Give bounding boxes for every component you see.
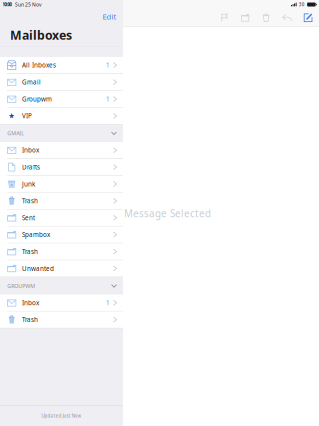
staticText: No Message Selected bbox=[108, 207, 211, 220]
button[interactable]: Drafts bbox=[0, 159, 123, 176]
staticText: GROUPWM bbox=[7, 282, 35, 290]
button[interactable]: Groupwm bbox=[0, 91, 123, 108]
staticText: Unwanted bbox=[22, 264, 54, 273]
button[interactable]: Compose bbox=[298, 9, 319, 26]
staticText: 1 bbox=[106, 61, 110, 69]
staticText: Groupwm bbox=[22, 95, 52, 103]
staticText: Inbox bbox=[22, 146, 39, 154]
button[interactable]: GMAIL bbox=[0, 125, 123, 142]
button[interactable]: Junk bbox=[0, 176, 123, 193]
staticText: Spambox bbox=[22, 230, 50, 239]
button[interactable]: Flag bbox=[215, 9, 235, 26]
staticText: 10:00 bbox=[3, 2, 12, 7]
button[interactable]: Inbox bbox=[0, 142, 123, 159]
button[interactable]: Inbox bbox=[0, 295, 123, 311]
button[interactable]: Delete bbox=[256, 9, 277, 26]
staticText: Updated Just Now bbox=[41, 413, 81, 419]
staticText: Inbox bbox=[22, 298, 39, 307]
staticText: Edit bbox=[103, 11, 117, 22]
staticText: Gmail bbox=[22, 78, 41, 86]
button[interactable]: Unwanted bbox=[0, 260, 123, 277]
button[interactable]: GROUPWM bbox=[0, 277, 123, 295]
staticText: All Inboxes bbox=[22, 61, 56, 69]
staticText: Sent bbox=[22, 213, 35, 222]
button[interactable]: Gmail bbox=[0, 74, 123, 91]
button[interactable]: Reply bbox=[277, 9, 298, 26]
staticText: Trash bbox=[22, 247, 38, 256]
staticText: Trash bbox=[22, 315, 38, 324]
staticText: Junk bbox=[22, 180, 35, 188]
staticText: GMAIL bbox=[7, 130, 24, 137]
staticText: 1 bbox=[106, 298, 110, 307]
button[interactable]: Sent bbox=[0, 210, 123, 226]
staticText: Trash bbox=[22, 197, 38, 205]
button[interactable]: VIP bbox=[0, 108, 123, 125]
button[interactable]: All Inboxes bbox=[0, 57, 123, 74]
staticText: 30 bbox=[299, 1, 305, 8]
button[interactable]: Trash bbox=[0, 243, 123, 260]
staticText: 1 bbox=[106, 95, 110, 103]
button[interactable]: Move to folder bbox=[235, 9, 256, 26]
staticText: Drafts bbox=[22, 163, 40, 171]
staticText: Sun 25 Nov bbox=[15, 1, 42, 8]
button[interactable]: Edit bbox=[103, 11, 123, 22]
staticText: Mailboxes bbox=[10, 27, 72, 43]
staticText: VIP bbox=[22, 112, 32, 120]
button[interactable]: Trash bbox=[0, 193, 123, 210]
button[interactable]: Spambox bbox=[0, 226, 123, 243]
button[interactable]: Trash bbox=[0, 311, 123, 328]
